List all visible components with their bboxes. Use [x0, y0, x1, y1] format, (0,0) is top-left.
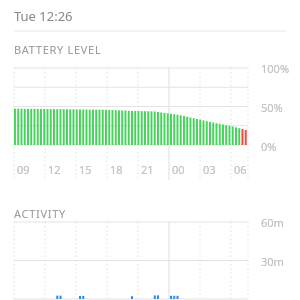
staticText: 09 [17, 162, 30, 177]
staticText: 21 [141, 162, 154, 177]
staticText: 06 [234, 162, 247, 177]
staticText: BATTERY LEVEL [14, 42, 102, 57]
staticText: 100% [261, 61, 290, 76]
staticText: 03 [203, 162, 216, 177]
staticText: 18 [110, 162, 123, 177]
staticText: Tue 12:26 [14, 7, 73, 25]
staticText: 30m [261, 254, 284, 269]
staticText: 12 [48, 162, 61, 177]
staticText: 00 [172, 162, 185, 177]
staticText: 0% [261, 139, 277, 154]
button[interactable]: Tue 12:26 [14, 7, 73, 25]
staticText: 50% [261, 100, 283, 115]
staticText: 60m [261, 215, 284, 230]
staticText: ACTIVITY [14, 206, 66, 221]
staticText: 15 [79, 162, 92, 177]
